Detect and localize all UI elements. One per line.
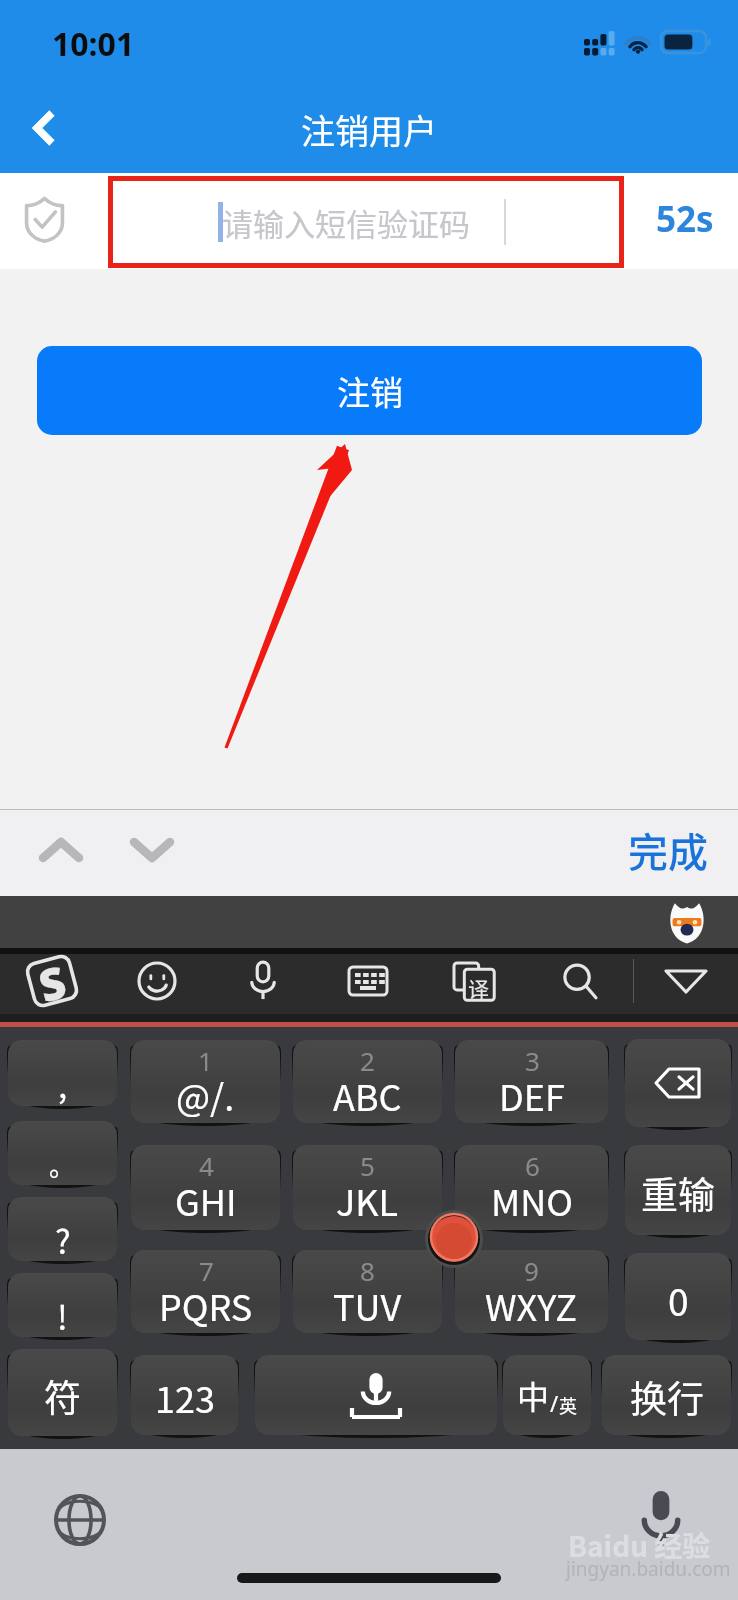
staticText: 52s [656, 195, 714, 243]
button[interactable]: Voice input [629, 1486, 693, 1550]
button[interactable] [255, 1355, 497, 1435]
staticText: @/. [176, 1069, 235, 1117]
staticText: 6 [525, 1148, 540, 1183]
button[interactable]: 0 [625, 1253, 731, 1340]
button[interactable]: 中 [503, 1355, 591, 1435]
button[interactable]: 5 [293, 1145, 442, 1230]
staticText: 1 [198, 1043, 213, 1078]
button[interactable]: Next field [116, 814, 188, 886]
button[interactable]: 完成 [622, 812, 714, 888]
staticText: ? [55, 1216, 71, 1261]
staticText: JKL [336, 1174, 399, 1224]
button[interactable]: Search [547, 949, 613, 1013]
button[interactable]: , [8, 1040, 117, 1106]
staticText: 。 [49, 1146, 76, 1184]
button[interactable]: 9 [455, 1250, 608, 1333]
staticText: GHI [175, 1174, 237, 1224]
staticText: 请输入短信验证码 [222, 200, 470, 245]
staticText: PQRS [159, 1279, 253, 1327]
staticText: 完成 [628, 821, 708, 879]
staticText: 注销用户 [301, 105, 437, 154]
staticText: 注销 [337, 367, 403, 415]
button[interactable]: ? [8, 1197, 117, 1261]
button[interactable]: 6 [455, 1145, 608, 1230]
button[interactable]: 注销 [37, 346, 702, 435]
staticText: 中 [517, 1372, 550, 1418]
button[interactable]: 8 [293, 1250, 442, 1333]
button[interactable]: ! [8, 1273, 117, 1337]
button[interactable]: 符 [8, 1349, 117, 1436]
staticText: MNO [491, 1174, 573, 1224]
button[interactable]: Sogou input [19, 949, 85, 1013]
button[interactable]: Voice input [230, 949, 296, 1013]
button[interactable]: 重输 [625, 1145, 731, 1235]
staticText: 符 [44, 1369, 81, 1423]
staticText: , [58, 1060, 68, 1106]
button[interactable]: Back [11, 95, 77, 161]
staticText: WXYZ [485, 1279, 578, 1327]
staticText: / [550, 1388, 559, 1418]
button[interactable]: 。 [8, 1121, 117, 1185]
staticText: jingyan.baidu.com [566, 1556, 731, 1582]
button[interactable]: Emoji [124, 949, 190, 1013]
button[interactable]: Sogou assistant [668, 902, 706, 944]
staticText: 4 [199, 1148, 214, 1183]
staticText: 9 [524, 1253, 539, 1288]
staticText: 7 [199, 1253, 214, 1288]
button[interactable]: 4 [131, 1145, 280, 1230]
button[interactable]: 换行 [602, 1355, 731, 1435]
button[interactable]: 请输入短信验证码 [108, 176, 624, 268]
staticText: Baidu 经验 [568, 1525, 711, 1566]
staticText: 10:01 [52, 22, 135, 66]
staticText: ABC [333, 1069, 402, 1117]
staticText: DEF [499, 1069, 565, 1117]
staticText: 8 [360, 1253, 375, 1288]
button[interactable]: 52s [650, 193, 720, 245]
staticText: 2 [360, 1043, 375, 1078]
staticText: S [32, 951, 71, 1009]
staticText: ! [57, 1292, 68, 1337]
staticText: TUV [333, 1279, 402, 1327]
staticText: 重输 [641, 1166, 715, 1220]
staticText: 译 [468, 973, 489, 1003]
button[interactable]: Hide keyboard [653, 949, 719, 1013]
staticText: 3 [525, 1043, 540, 1078]
staticText: 0 [668, 1273, 689, 1327]
button[interactable]: Change input language [48, 1488, 112, 1552]
staticText: 123 [155, 1371, 215, 1423]
staticText: 5 [360, 1148, 375, 1183]
button[interactable]: Cursor pad [424, 1209, 484, 1269]
button[interactable]: 3 [455, 1040, 608, 1123]
button[interactable]: 2 [293, 1040, 442, 1123]
other: Security [25, 197, 64, 242]
button[interactable]: Keyboard layout [335, 949, 401, 1013]
button[interactable]: 7 [131, 1250, 280, 1333]
button[interactable]: Translate [441, 949, 507, 1013]
staticText: 换行 [630, 1370, 704, 1424]
button[interactable]: 1 [131, 1040, 280, 1123]
button[interactable]: 123 [131, 1355, 238, 1435]
button[interactable]: Previous field [25, 814, 97, 886]
staticText: 英 [559, 1392, 577, 1418]
button[interactable] [625, 1039, 731, 1127]
